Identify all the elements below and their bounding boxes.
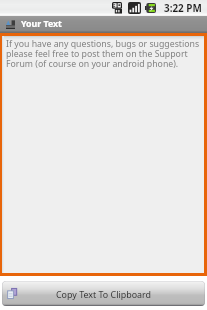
other: Copy to clipboard [7,288,18,299]
staticText: Copy Text To Clipboard [56,288,151,300]
button[interactable]: Copy Text To Clipboard [2,281,205,306]
staticText: 3:22 PM [164,1,202,14]
staticText: If you have any questions, bugs or sugge… [6,38,201,69]
staticText: Your Text [21,18,62,30]
